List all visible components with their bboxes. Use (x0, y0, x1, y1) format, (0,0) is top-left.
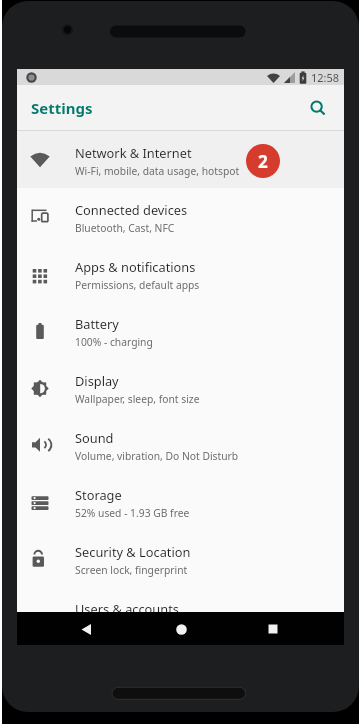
staticText: 2 (258, 150, 268, 173)
button[interactable]: Network & Internet (17, 131, 344, 188)
staticText: Battery (75, 315, 119, 332)
staticText: Bluetooth, Cast, NFC (75, 221, 175, 235)
staticText: Security & Location (75, 543, 191, 560)
button[interactable] (307, 97, 329, 119)
button[interactable]: Apps & notifications (17, 245, 344, 302)
staticText: Settings (31, 98, 93, 118)
staticText: 52% used - 1.93 GB free (75, 506, 190, 520)
staticText: Display (75, 372, 119, 389)
button[interactable]: Security & Location (17, 530, 344, 587)
button[interactable] (260, 616, 286, 642)
staticText: Apps & notifications (75, 258, 196, 275)
staticText: Users & accounts (75, 600, 179, 617)
staticText: Permissions, default apps (75, 278, 200, 292)
staticText: Current user: Owner (75, 620, 175, 634)
button[interactable]: Users & accounts (17, 587, 344, 644)
staticText: 12:58 (311, 70, 340, 85)
button[interactable]: Battery (17, 302, 344, 359)
button[interactable]: Display (17, 359, 344, 416)
staticText: Wallpaper, sleep, font size (75, 392, 200, 406)
staticText: Volume, vibration, Do Not Disturb (75, 449, 239, 463)
button[interactable] (73, 616, 99, 642)
button[interactable]: Sound (17, 416, 344, 473)
button[interactable] (168, 616, 194, 642)
staticText: Storage (75, 486, 122, 503)
button[interactable]: Connected devices (17, 188, 344, 245)
staticText: Wi-Fi, mobile, data usage, hotspot (75, 164, 240, 178)
staticText: Screen lock, fingerprint (75, 563, 188, 577)
staticText: 100% - charging (75, 335, 153, 349)
staticText: Sound (75, 429, 114, 446)
button[interactable]: Storage (17, 473, 344, 530)
staticText: Network & Internet (75, 144, 192, 161)
staticText: Connected devices (75, 201, 188, 218)
